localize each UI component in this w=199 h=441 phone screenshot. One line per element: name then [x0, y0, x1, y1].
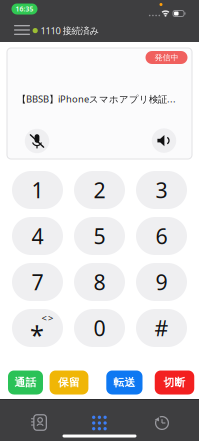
staticText: 発信中	[154, 53, 178, 62]
staticText: 1	[31, 176, 43, 204]
staticText: 6	[155, 222, 167, 250]
button[interactable]: 5	[74, 217, 125, 255]
button[interactable]: 保留	[50, 370, 88, 394]
button[interactable]: 1	[12, 171, 63, 209]
staticText: 8	[93, 268, 105, 296]
staticText: 5	[93, 222, 105, 250]
button[interactable]: *	[12, 309, 63, 347]
staticText: 4	[31, 222, 43, 250]
button[interactable]: Contacts	[22, 407, 56, 437]
staticText: <	[42, 312, 47, 324]
staticText: 転送	[113, 376, 135, 389]
staticText: 【BBSB】iPhoneスマホアプリ検証...	[17, 93, 176, 105]
staticText: 3	[155, 176, 167, 204]
button[interactable]: 7	[12, 263, 63, 301]
staticText: 切断	[163, 376, 185, 389]
staticText: 9	[155, 268, 167, 296]
staticText: 2	[93, 176, 105, 204]
staticText: *	[30, 318, 44, 351]
button[interactable]: 転送	[106, 370, 142, 394]
button[interactable]: 8	[74, 263, 125, 301]
staticText: 通話	[14, 376, 36, 389]
button[interactable]: History	[145, 408, 179, 438]
button[interactable]: 3	[136, 171, 187, 209]
button[interactable]: 0	[74, 309, 125, 347]
button[interactable]: Mute	[25, 129, 49, 153]
button[interactable]: 9	[136, 263, 187, 301]
button[interactable]: Keypad	[82, 408, 116, 438]
staticText: 7	[31, 268, 43, 296]
button[interactable]: 切断	[155, 370, 194, 394]
button[interactable]: Menu	[10, 18, 34, 42]
button[interactable]: 通話	[8, 370, 43, 394]
staticText: 0	[93, 314, 105, 342]
staticText: 保留	[58, 376, 80, 389]
staticText: >	[48, 312, 53, 324]
button[interactable]: #	[136, 309, 187, 347]
staticText: #	[154, 314, 168, 342]
button[interactable]: 4	[12, 217, 63, 255]
staticText: 16:35	[15, 5, 33, 13]
staticText: 1110 接続済み	[40, 24, 99, 37]
button[interactable]: 6	[136, 217, 187, 255]
button[interactable]: 2	[74, 171, 125, 209]
button[interactable]: Speaker	[152, 128, 176, 153]
